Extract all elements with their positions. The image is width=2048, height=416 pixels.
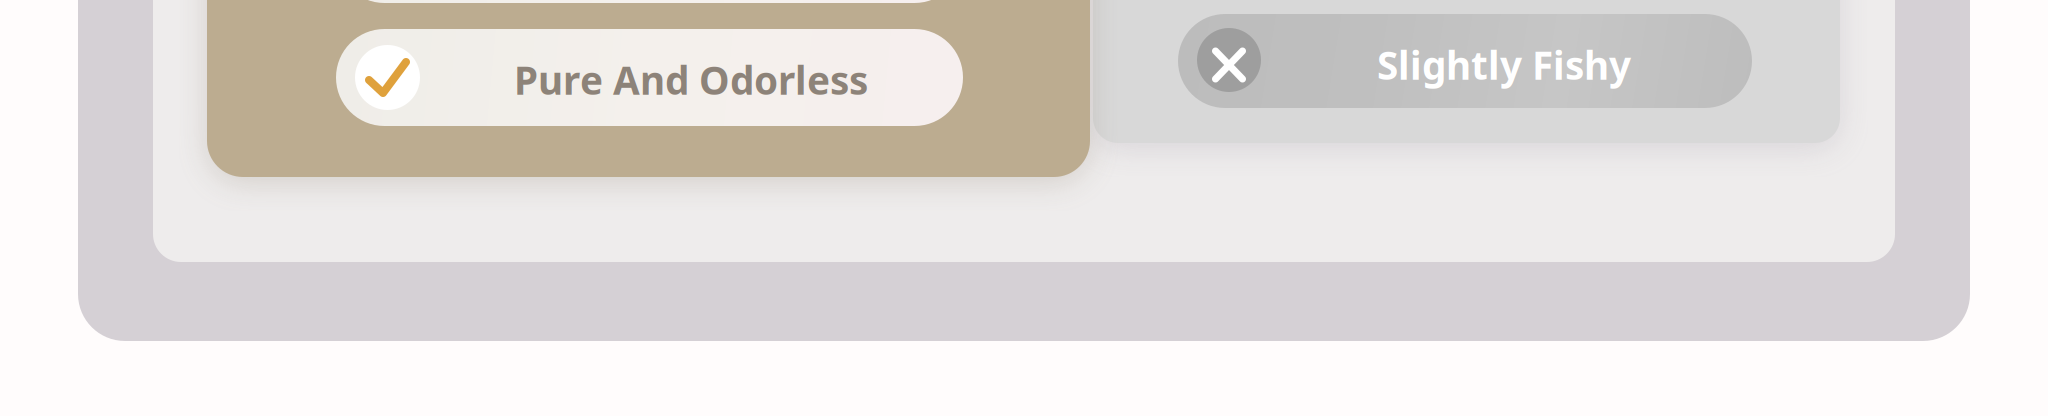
staticText: Slightly Fishy xyxy=(1377,39,1631,90)
staticText: Pure And Odorless xyxy=(514,54,868,105)
button[interactable]: Previous option xyxy=(336,0,963,3)
button[interactable]: Slightly Fishy xyxy=(1178,14,1752,108)
button[interactable]: Pure And Odorless xyxy=(336,29,963,126)
